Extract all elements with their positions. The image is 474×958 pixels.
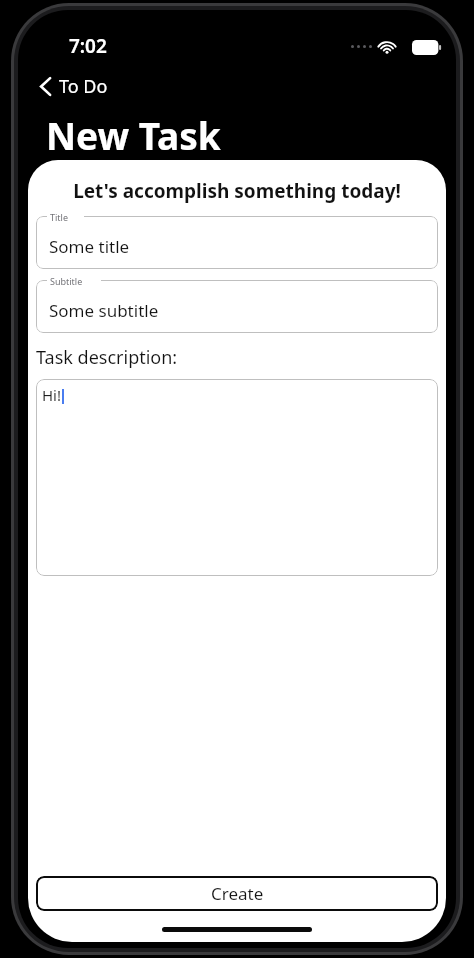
button[interactable]: Create: [36, 876, 438, 911]
staticText: Title: [50, 211, 68, 223]
staticText: Some subtitle: [49, 299, 159, 322]
staticText: Hi!: [42, 385, 62, 405]
staticText: Subtitle: [50, 275, 83, 287]
button[interactable]: Subtitle: [36, 280, 438, 333]
button[interactable]: Back: [34, 70, 114, 103]
staticText: Some title: [49, 235, 130, 258]
staticText: 7:02: [69, 33, 107, 59]
staticText: New Task: [46, 110, 221, 160]
button[interactable]: Title: [36, 216, 438, 269]
button[interactable]: Hi!: [36, 379, 438, 576]
staticText: To Do: [59, 74, 108, 99]
staticText: Task description:: [36, 345, 178, 370]
staticText: Create: [211, 882, 264, 905]
staticText: Let's accomplish something today!: [28, 178, 446, 204]
other: Back: [40, 77, 51, 96]
